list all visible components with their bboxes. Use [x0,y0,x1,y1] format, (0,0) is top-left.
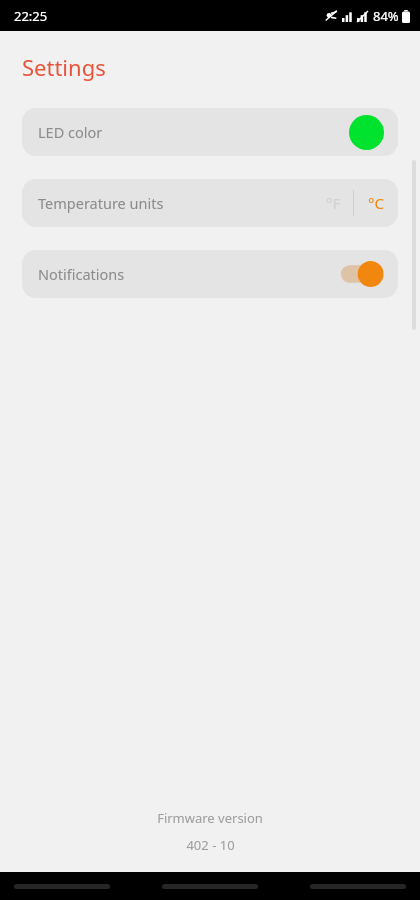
staticText: 22:25 [14,7,48,25]
button[interactable]: Navigation key 2 [310,884,406,889]
button[interactable]: Notifications toggle, on [338,257,386,291]
button[interactable]: Notifications [22,250,398,298]
staticText: Firmware version [157,809,263,827]
staticText: LED color [38,122,103,142]
button[interactable]: Temperature units [22,179,398,227]
button[interactable]: LED color [22,108,398,156]
button[interactable]: Navigation key 1 [162,884,258,889]
button[interactable]: Navigation key 0 [14,884,110,889]
button[interactable]: Choose LED color [349,115,384,150]
staticText: 84% [373,7,399,25]
staticText: Temperature units [38,193,164,213]
staticText: Settings [22,52,106,82]
button[interactable]: °C [354,193,398,213]
staticText: 402 - 10 [186,836,235,854]
button[interactable]: °F [314,193,353,213]
staticText: °C [368,193,384,213]
staticText: Notifications [38,264,125,284]
staticText: °F [326,193,341,213]
